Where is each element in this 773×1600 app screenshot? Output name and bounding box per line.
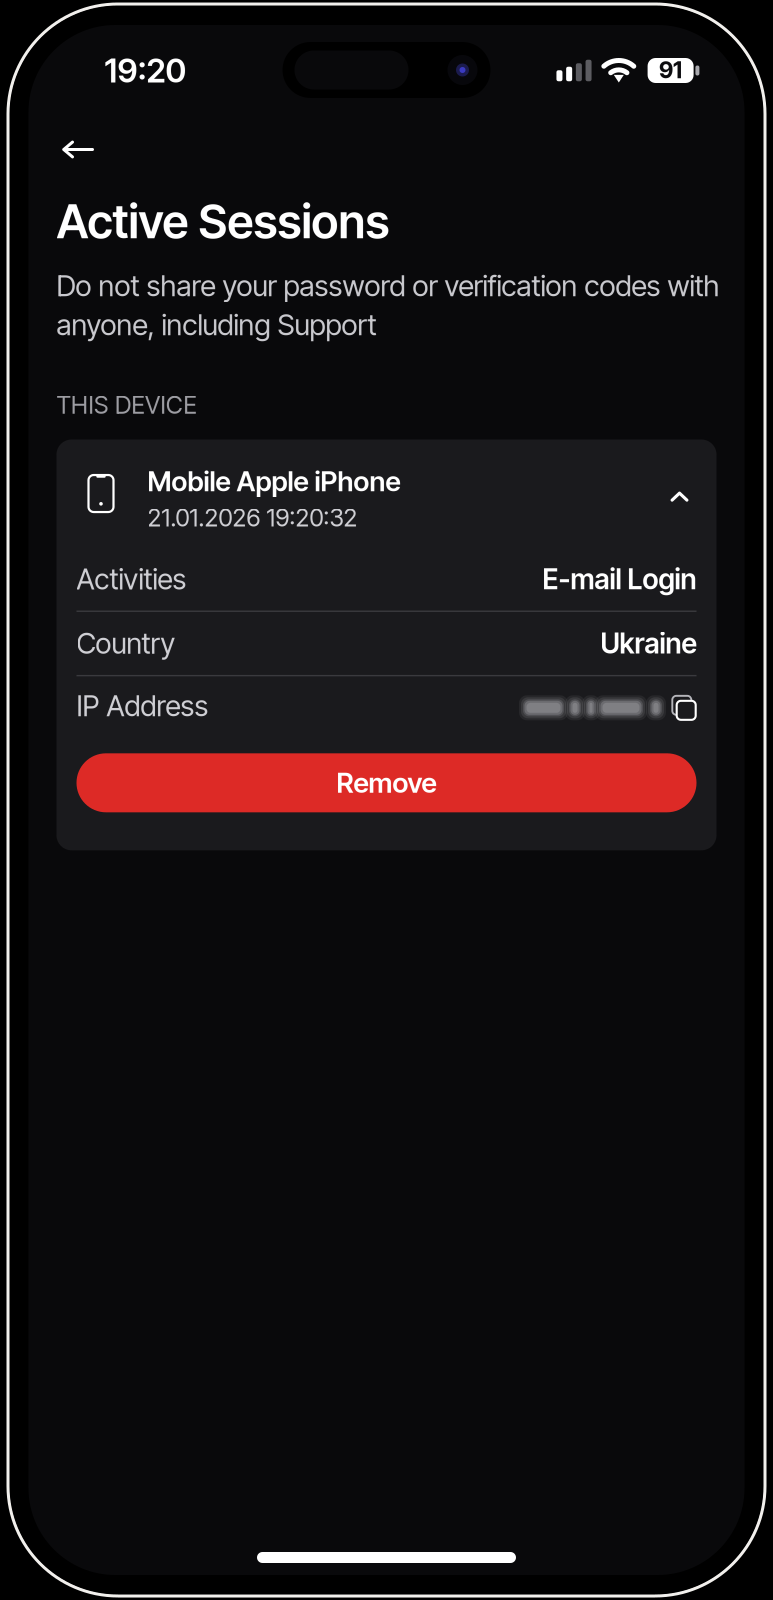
staticText: Country: [76, 626, 175, 661]
staticText: IP Address: [76, 689, 208, 723]
staticText: Ukraine: [600, 627, 696, 660]
staticText: Do not share your password or verificati…: [56, 268, 719, 342]
staticText: 21.01.2026 19:20:32: [147, 503, 357, 532]
staticText: Remove: [336, 766, 436, 799]
staticText: Activities: [76, 562, 186, 596]
button[interactable]: Remove: [76, 753, 696, 812]
staticText: 19:20: [104, 51, 186, 90]
staticText: Active Sessions: [56, 193, 389, 249]
staticText: Mobile Apple iPhone: [147, 465, 400, 498]
staticText: E-mail Login: [542, 562, 696, 596]
staticText: THIS DEVICE: [56, 390, 196, 420]
button[interactable]: Mobile Apple iPhone: [76, 439, 696, 547]
button[interactable]: Back: [46, 116, 108, 170]
staticText: 91: [659, 56, 682, 84]
button[interactable]: Copy IP address: [671, 695, 696, 721]
